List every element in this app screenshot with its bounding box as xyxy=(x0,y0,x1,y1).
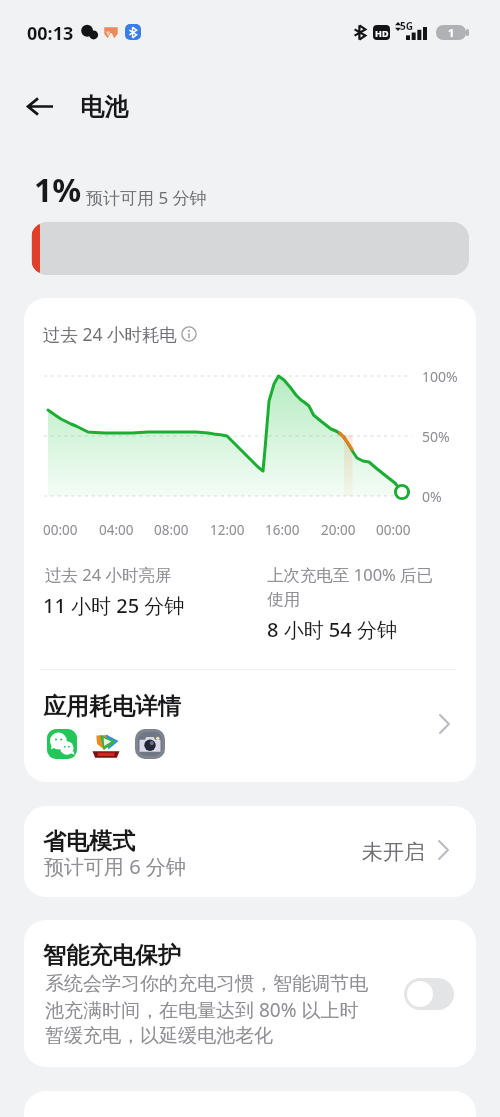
staticText: 省电模式 xyxy=(43,827,135,856)
staticText: 1% xyxy=(34,168,82,212)
staticText: 0% xyxy=(422,487,442,506)
staticText: 00:00 xyxy=(376,521,411,539)
staticText: 预计可用 5 分钟 xyxy=(86,186,207,209)
staticText: 1 xyxy=(448,25,455,40)
staticText: 11 小时 25 分钟 xyxy=(43,592,185,619)
button[interactable]: 省电模式 xyxy=(24,806,476,897)
staticText: HD xyxy=(375,27,389,39)
staticText: 50% xyxy=(422,427,450,446)
staticText: 04:00 xyxy=(99,521,134,539)
staticText: 电池 xyxy=(80,92,128,122)
staticText: 00:00 xyxy=(43,521,78,539)
staticText: 8 小时 54 分钟 xyxy=(267,616,397,643)
button[interactable]: Toggle smart charging xyxy=(404,978,454,1010)
staticText: 未开启 xyxy=(362,839,425,865)
staticText: 过去 24 小时亮屏 xyxy=(45,563,172,586)
staticText: 100% xyxy=(422,367,458,386)
staticText: 08:00 xyxy=(154,521,189,539)
staticText: 00:13 xyxy=(27,21,74,46)
staticText: 12:00 xyxy=(210,521,245,539)
staticText: 智能充电保护 xyxy=(43,941,181,970)
staticText: 预计可用 6 分钟 xyxy=(44,853,186,880)
button[interactable]: Back xyxy=(18,84,62,128)
staticText: 20:00 xyxy=(321,521,356,539)
staticText: 上次充电至 100% 后已使用 xyxy=(267,563,443,610)
staticText: 过去 24 小时耗电 xyxy=(43,322,178,346)
staticText: 系统会学习你的充电习惯，智能调节电池充满时间，在电量达到 80% 以上时暂缓充电… xyxy=(45,972,375,1047)
staticText: 16:00 xyxy=(265,521,300,539)
staticText: 应用耗电详情 xyxy=(43,692,181,721)
button[interactable]: 应用耗电详情 xyxy=(24,676,476,782)
staticText: 5G xyxy=(400,19,413,33)
